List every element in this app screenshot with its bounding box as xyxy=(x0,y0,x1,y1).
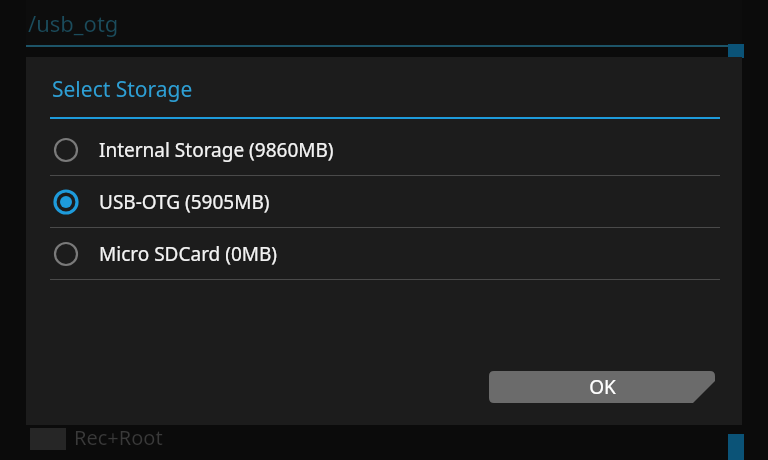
staticText: OK xyxy=(589,374,616,400)
staticText: USB-OTG (5905MB) xyxy=(99,189,270,215)
button[interactable]: Internal Storage (9860MB) xyxy=(26,124,742,175)
staticText: Select Storage xyxy=(52,75,193,104)
staticText: Internal Storage (9860MB) xyxy=(99,137,334,163)
staticText: /usb_otg xyxy=(28,8,119,38)
button[interactable]: OK xyxy=(489,371,715,403)
button[interactable]: Micro SDCard (0MB) xyxy=(26,228,742,279)
staticText: Rec+Root xyxy=(74,424,163,451)
staticText: Micro SDCard (0MB) xyxy=(99,241,278,267)
button[interactable]: USB-OTG (5905MB) xyxy=(26,176,742,227)
